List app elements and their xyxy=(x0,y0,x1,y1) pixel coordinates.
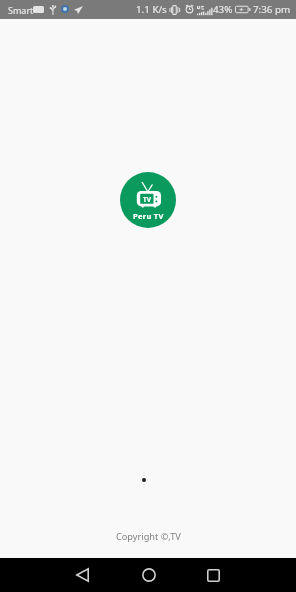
staticText: 7:36 pm xyxy=(253,3,291,16)
button[interactable]: Back xyxy=(60,558,105,592)
staticText: Peru TV xyxy=(133,211,164,221)
staticText: Copyright ©,TV xyxy=(116,530,181,543)
button[interactable]: Home xyxy=(126,558,171,592)
staticText: TV xyxy=(143,195,151,204)
button[interactable]: Peru TV logo xyxy=(120,172,176,228)
staticText: 43% xyxy=(213,3,233,16)
staticText: Smart xyxy=(8,4,34,16)
button[interactable]: Recent apps xyxy=(191,558,236,592)
staticText: 1.1 K/s xyxy=(136,3,167,16)
